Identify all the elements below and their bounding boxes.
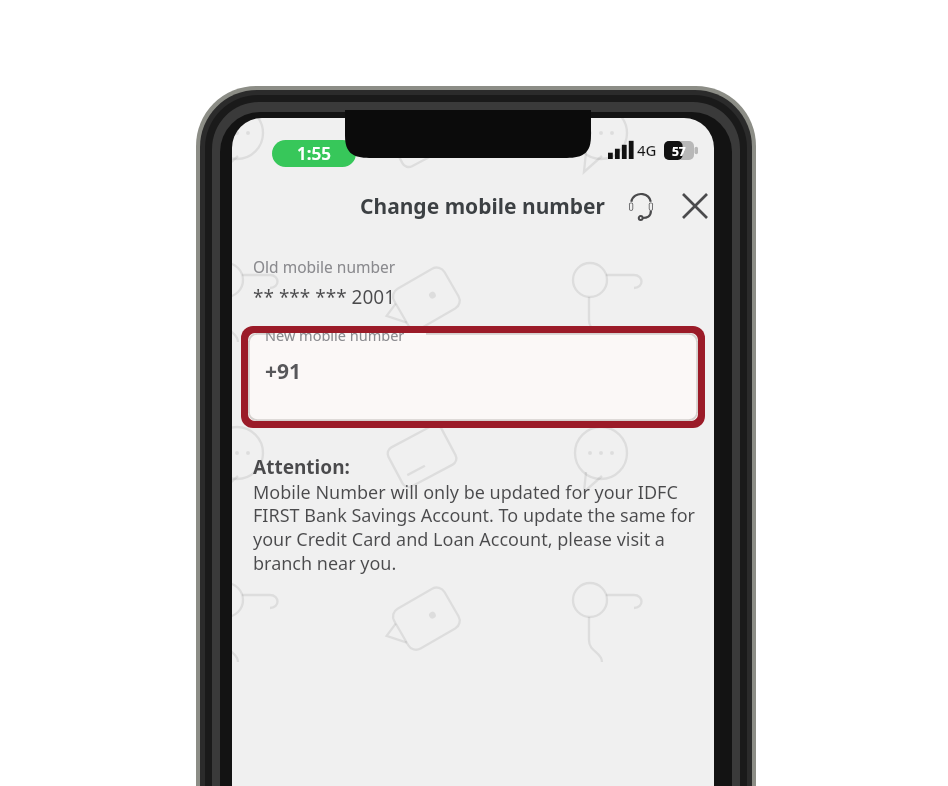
staticText: 57	[672, 143, 686, 159]
button[interactable]: Customer support	[622, 187, 660, 225]
staticText: Old mobile number	[253, 256, 396, 277]
staticText: ** *** *** 2001	[253, 284, 396, 310]
staticText: Change mobile number	[360, 192, 606, 221]
staticText: +91	[265, 357, 302, 386]
staticText: Mobile Number will only be updated for y…	[253, 480, 704, 576]
button[interactable]: New mobile number	[241, 326, 705, 428]
staticText: 1:55	[297, 142, 331, 165]
staticText: New mobile number	[265, 333, 405, 345]
button[interactable]: Close	[676, 187, 714, 225]
staticText: 4G	[637, 140, 657, 160]
staticText: Attention:	[253, 454, 350, 480]
